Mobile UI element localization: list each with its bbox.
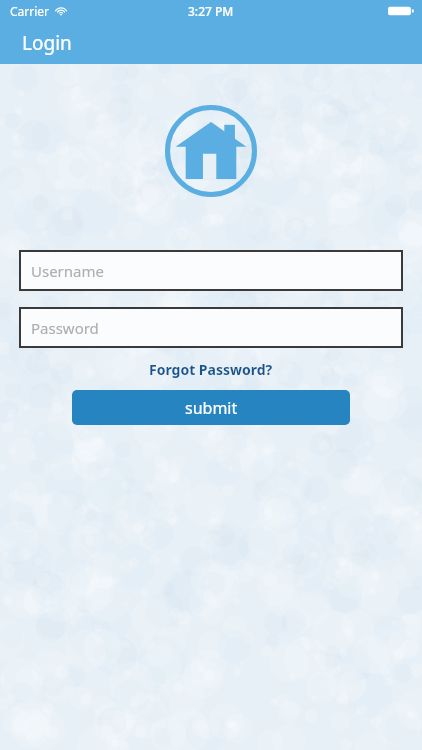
staticText: Forgot Password? bbox=[149, 360, 273, 379]
button[interactable]: Forgot Password? bbox=[0, 360, 422, 379]
staticText: Password bbox=[31, 318, 99, 338]
staticText: submit bbox=[185, 397, 238, 419]
staticText: Login bbox=[22, 30, 72, 56]
staticText: Carrier bbox=[10, 3, 50, 19]
button[interactable]: Password bbox=[19, 307, 403, 348]
staticText: Username bbox=[31, 261, 104, 281]
button[interactable]: Username bbox=[19, 250, 403, 291]
button[interactable]: submit bbox=[72, 390, 350, 425]
staticText: 3:27 PM bbox=[188, 3, 234, 19]
